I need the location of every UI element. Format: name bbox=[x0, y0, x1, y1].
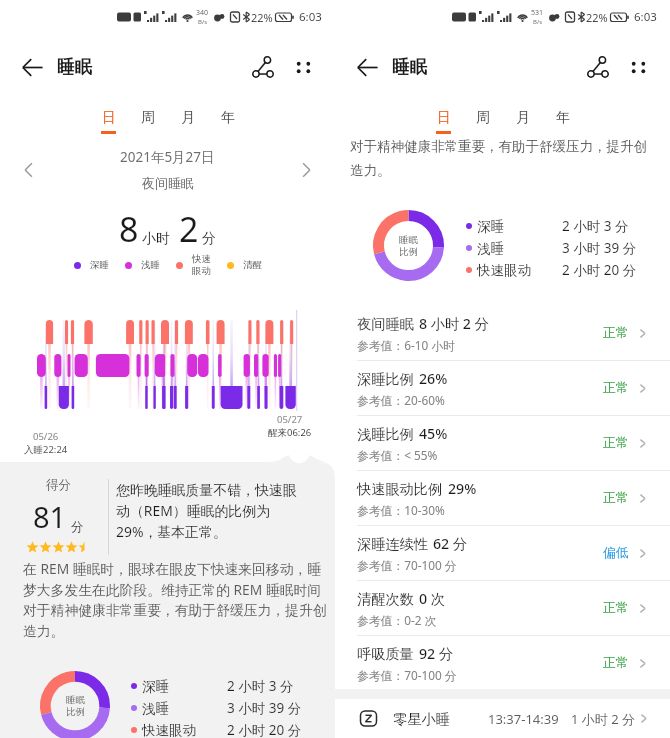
button[interactable]: 深睡连续性 bbox=[335, 526, 670, 580]
staticText: B/s bbox=[198, 18, 208, 26]
staticText: 比例 bbox=[399, 246, 418, 258]
button[interactable]: More options bbox=[622, 51, 654, 83]
staticText: 05/27 bbox=[277, 413, 303, 426]
staticText: 深睡 bbox=[142, 678, 169, 695]
staticText: 周 bbox=[141, 109, 155, 127]
staticText: 正常 bbox=[603, 325, 629, 341]
button[interactable]: 月 bbox=[168, 109, 208, 139]
button[interactable]: 零星小睡 bbox=[335, 699, 670, 738]
staticText: 26% bbox=[419, 369, 448, 388]
staticText: 62 分 bbox=[433, 534, 468, 553]
staticText: 快速 bbox=[192, 253, 211, 265]
button[interactable]: 年 bbox=[543, 109, 583, 139]
staticText: 81 bbox=[33, 497, 67, 536]
staticText: 参考值：20-60% bbox=[357, 392, 445, 408]
button[interactable]: Previous day bbox=[16, 157, 42, 183]
staticText: 清醒 bbox=[243, 259, 262, 271]
staticText: 分 bbox=[71, 519, 84, 535]
staticText: 浅睡 bbox=[477, 240, 504, 257]
button[interactable]: 日 bbox=[423, 109, 463, 139]
staticText: 13:37-14:39 bbox=[488, 710, 559, 728]
staticText: 3 小时 39 分 bbox=[227, 699, 302, 717]
staticText: 1 小时 2 分 bbox=[571, 710, 636, 728]
staticText: 正常 bbox=[603, 380, 629, 396]
staticText: 8 bbox=[119, 206, 139, 252]
staticText: 92 分 bbox=[419, 644, 454, 663]
staticText: 参考值：10-30% bbox=[357, 502, 445, 518]
staticText: 531 bbox=[531, 8, 544, 18]
staticText: 日 bbox=[437, 109, 451, 127]
staticText: 醒来06:26 bbox=[268, 426, 312, 439]
button[interactable]: 夜间睡眠 bbox=[335, 306, 670, 360]
button[interactable]: More options bbox=[287, 51, 319, 83]
staticText: 22% bbox=[586, 10, 608, 25]
staticText: 2 小时 20 分 bbox=[227, 721, 302, 738]
staticText: 0 次 bbox=[419, 589, 445, 608]
staticText: 05/26 bbox=[33, 430, 59, 443]
button[interactable]: 快速眼动比例 bbox=[335, 471, 670, 525]
staticText: 比例 bbox=[66, 706, 85, 718]
staticText: 参考值：70-100 分 bbox=[357, 667, 457, 683]
staticText: 2021年5月27日 bbox=[120, 148, 215, 166]
button[interactable]: 清醒次数 bbox=[335, 581, 670, 635]
staticText: 29% bbox=[448, 479, 477, 498]
staticText: 眼动 bbox=[192, 265, 211, 277]
button[interactable]: Next day bbox=[293, 157, 319, 183]
staticText: B/s bbox=[533, 18, 543, 26]
staticText: 2 小时 3 分 bbox=[227, 677, 294, 695]
staticText: 45% bbox=[419, 424, 448, 443]
staticText: 分 bbox=[202, 230, 216, 248]
staticText: 深睡 bbox=[477, 218, 504, 235]
staticText: 在 REM 睡眠时，眼球在眼皮下快速来回移动，睡 梦大多发生在此阶段。维持正常的… bbox=[23, 559, 327, 640]
button[interactable]: Back bbox=[16, 51, 48, 83]
staticText: 深睡连续性 bbox=[357, 535, 428, 553]
staticText: 2 bbox=[179, 206, 199, 252]
staticText: 小时 bbox=[142, 230, 170, 248]
staticText: 正常 bbox=[603, 490, 629, 506]
button[interactable]: Share bbox=[247, 51, 279, 83]
staticText: 偏低 bbox=[603, 545, 629, 561]
button[interactable]: 呼吸质量 bbox=[335, 636, 670, 690]
staticText: 快速眼动 bbox=[142, 722, 196, 738]
staticText: 2 小时 20 分 bbox=[562, 261, 637, 279]
staticText: 快速眼动比例 bbox=[357, 480, 443, 498]
staticText: 日 bbox=[102, 109, 116, 127]
staticText: 清醒次数 bbox=[357, 590, 414, 608]
button[interactable]: 日 bbox=[88, 109, 128, 139]
staticText: 8 小时 2 分 bbox=[419, 314, 489, 333]
staticText: 浅睡 bbox=[141, 259, 160, 271]
button[interactable]: 周 bbox=[463, 109, 503, 139]
staticText: 夜间睡眠 bbox=[357, 315, 414, 333]
staticText: 月 bbox=[516, 109, 530, 127]
staticText: 睡眠 bbox=[399, 234, 418, 246]
staticText: 22% bbox=[251, 10, 273, 25]
staticText: 浅睡比例 bbox=[357, 425, 414, 443]
button[interactable]: Back bbox=[351, 51, 383, 83]
staticText: 睡眠 bbox=[392, 56, 427, 78]
staticText: 年 bbox=[221, 109, 235, 127]
button[interactable]: 深睡比例 bbox=[335, 361, 670, 415]
button[interactable]: 年 bbox=[208, 109, 248, 139]
button[interactable]: 周 bbox=[128, 109, 168, 139]
staticText: 6:03 bbox=[299, 9, 322, 25]
staticText: 正常 bbox=[603, 655, 629, 671]
button[interactable]: 浅睡比例 bbox=[335, 416, 670, 470]
staticText: 深睡 bbox=[90, 259, 109, 271]
staticText: 呼吸质量 bbox=[357, 645, 414, 663]
staticText: 2 小时 3 分 bbox=[562, 217, 629, 235]
staticText: 夜间睡眠 bbox=[142, 175, 194, 191]
button[interactable]: 月 bbox=[503, 109, 543, 139]
staticText: 得分 bbox=[46, 477, 71, 493]
button[interactable]: Share bbox=[582, 51, 614, 83]
staticText: 周 bbox=[476, 109, 490, 127]
staticText: 深睡比例 bbox=[357, 370, 414, 388]
staticText: 您昨晚睡眠质量不错，快速眼 动（REM）睡眠的比例为 29%，基本正常。 bbox=[116, 482, 297, 541]
staticText: 零星小睡 bbox=[393, 710, 450, 728]
staticText: 3 小时 39 分 bbox=[562, 239, 637, 257]
staticText: 入睡22:24 bbox=[24, 443, 68, 456]
staticText: 参考值：0-2 次 bbox=[357, 612, 437, 628]
staticText: 6:03 bbox=[634, 9, 657, 25]
staticText: 年 bbox=[556, 109, 570, 127]
staticText: 睡眠 bbox=[66, 694, 85, 706]
staticText: 浅睡 bbox=[142, 700, 169, 717]
